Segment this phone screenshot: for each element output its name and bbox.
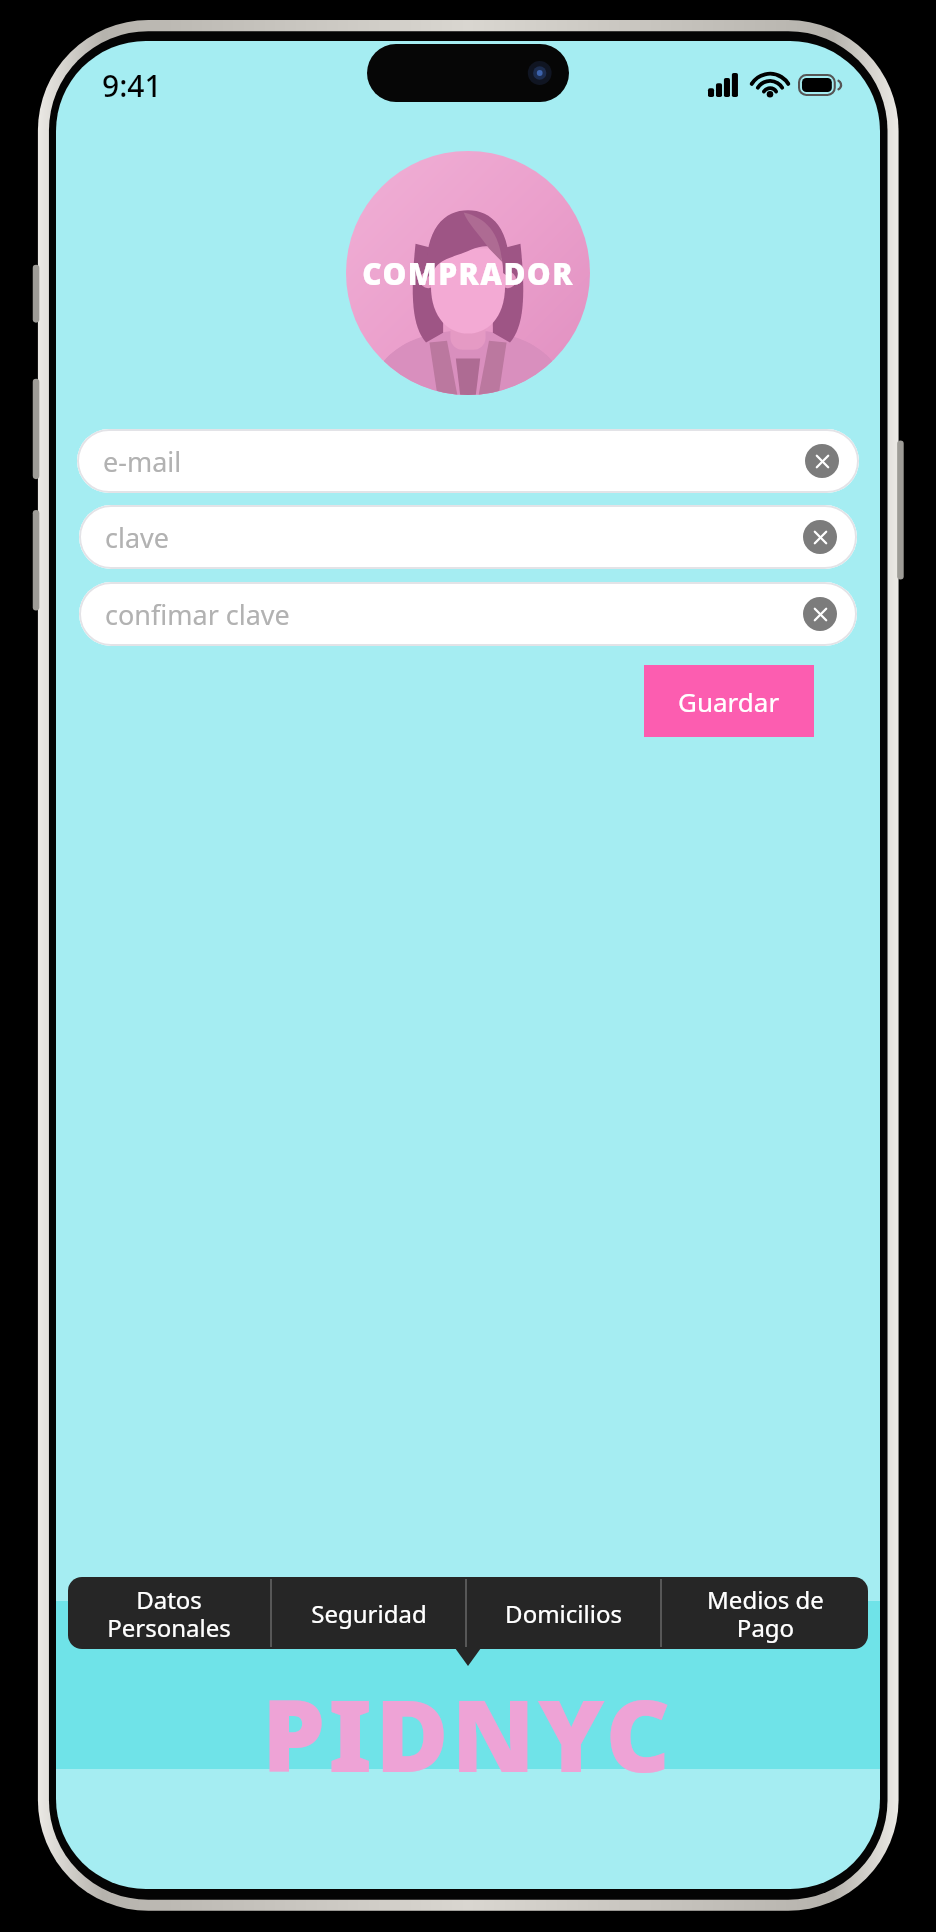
button[interactable]: clave [79, 505, 857, 569]
button[interactable]: Datos Personales [68, 1577, 270, 1649]
staticText: 9:41 [102, 65, 162, 106]
button[interactable]: e-mail [77, 429, 859, 493]
button[interactable]: Clear e-mail [805, 444, 839, 478]
staticText: clave [105, 519, 170, 556]
button[interactable]: Clear confimar clave [803, 597, 837, 631]
staticText: COMPRADOR [362, 253, 574, 294]
button[interactable]: Medios de Pago [662, 1577, 868, 1649]
button[interactable]: Domicilios [467, 1577, 660, 1649]
button[interactable]: confimar clave [79, 582, 857, 646]
staticText: Datos Personales [107, 1583, 231, 1644]
staticText: e-mail [103, 443, 182, 480]
staticText: Medios de Pago [707, 1583, 824, 1644]
button[interactable]: Guardar [644, 665, 814, 737]
staticText: PIDNYC [262, 1665, 674, 1801]
button[interactable]: Clear clave [803, 520, 837, 554]
staticText: Guardar [678, 684, 780, 719]
staticText: confimar clave [105, 596, 290, 633]
button[interactable]: Seguridad [272, 1577, 465, 1649]
staticText: Seguridad [311, 1597, 427, 1630]
staticText: Domicilios [505, 1597, 622, 1630]
